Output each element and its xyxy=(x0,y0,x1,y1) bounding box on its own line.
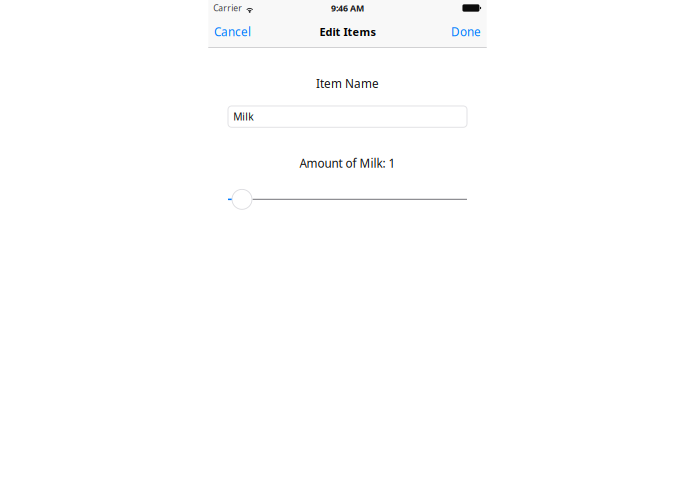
staticText: Carrier xyxy=(213,2,242,14)
staticText: Done xyxy=(451,24,481,40)
staticText: Cancel xyxy=(214,24,251,40)
button[interactable]: Cancel xyxy=(210,17,255,47)
button[interactable]: Milk xyxy=(228,106,467,127)
staticText: Item Name xyxy=(316,75,379,91)
staticText: Milk xyxy=(233,110,253,124)
staticText: Edit Items xyxy=(319,24,375,39)
staticText: Amount of Milk: 1 xyxy=(299,155,395,171)
staticText: 9:46 AM xyxy=(331,2,364,14)
button[interactable]: Done xyxy=(447,17,485,47)
